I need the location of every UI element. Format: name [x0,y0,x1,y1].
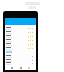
button[interactable] [5,46,36,50]
button[interactable]: Favorites [19,66,23,70]
staticText: LISTS [28,6,36,10]
button[interactable] [5,62,36,65]
button[interactable] [5,34,36,38]
button[interactable] [5,58,36,62]
button[interactable] [5,42,36,46]
button[interactable] [5,30,36,34]
button[interactable]: Profile [27,66,31,70]
button[interactable]: Home [10,66,14,70]
button[interactable] [5,54,36,58]
button[interactable] [5,38,36,42]
staticText: GOOGLE [25,1,40,6]
button[interactable] [5,50,36,54]
button[interactable] [5,26,36,30]
